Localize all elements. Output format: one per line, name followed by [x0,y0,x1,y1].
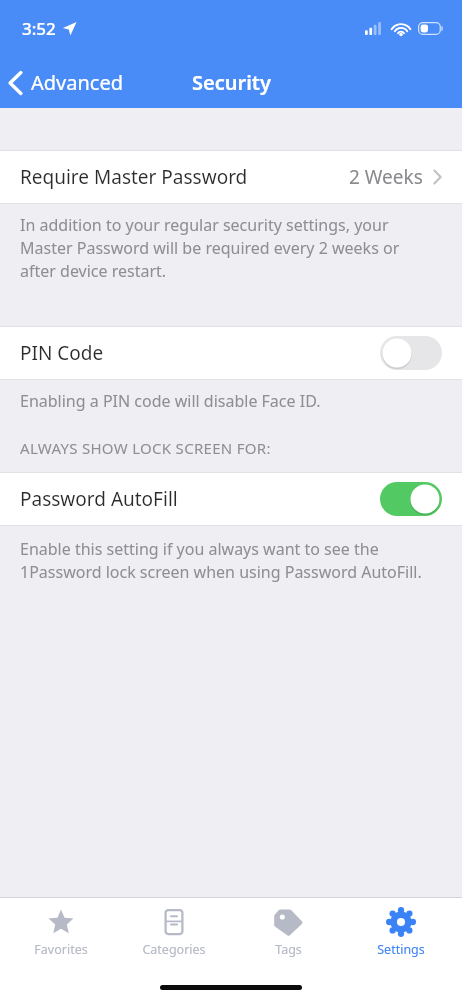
button[interactable]: Advanced [0,63,133,102]
button[interactable]: PIN Code [0,327,462,379]
staticText: ALWAYS SHOW LOCK SCREEN FOR: [20,438,271,458]
button[interactable]: Password AutoFill [0,473,462,525]
button[interactable]: Require Master Password [0,151,462,203]
button[interactable]: Settings [349,903,453,962]
staticText: Password AutoFill [20,486,178,512]
staticText: Tags [275,941,302,958]
button[interactable]: Tags [236,903,340,962]
staticText: Require Master Password [20,164,248,190]
staticText: Favorites [34,941,88,958]
staticText: In addition to your regular security set… [20,214,434,282]
staticText: 2 Weeks [349,164,423,190]
button[interactable]: Favorites [9,903,113,962]
staticText: Settings [377,941,425,958]
staticText: Enable this setting if you always want t… [20,538,434,583]
button[interactable]: Toggle on [380,482,442,516]
button[interactable]: Categories [122,903,226,962]
staticText: PIN Code [20,340,104,366]
staticText: Categories [142,941,206,958]
staticText: 3:52 [22,17,56,40]
button[interactable]: Toggle off [380,336,442,370]
staticText: Enabling a PIN code will disable Face ID… [20,390,434,412]
staticText: Security [192,69,271,96]
staticText: Advanced [31,69,123,96]
